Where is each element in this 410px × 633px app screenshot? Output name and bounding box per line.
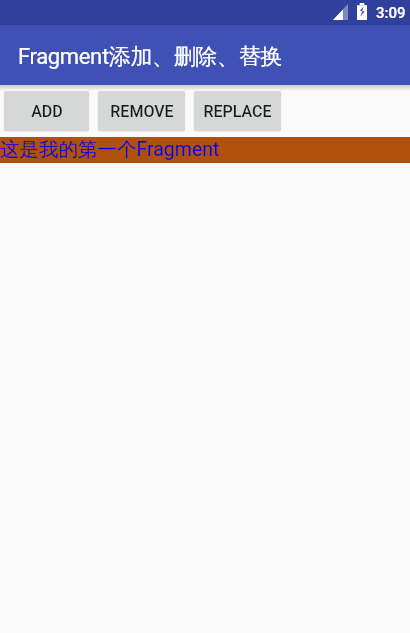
staticText: ADD <box>31 102 63 121</box>
button[interactable]: REPLACE <box>194 91 281 131</box>
staticText: Fragment添加、删除、替换 <box>18 43 282 71</box>
staticText: 3:09 <box>376 4 406 22</box>
staticText: 这是我的第一个Fragment <box>0 137 220 162</box>
other: Battery charging <box>357 3 367 20</box>
button[interactable]: ADD <box>4 91 89 131</box>
other: Mobile signal strength <box>333 4 348 20</box>
staticText: REMOVE <box>110 102 174 121</box>
button[interactable]: REMOVE <box>98 91 185 131</box>
staticText: REPLACE <box>203 102 272 121</box>
